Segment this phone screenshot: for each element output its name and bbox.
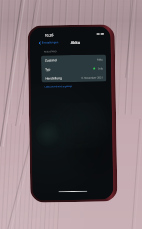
button[interactable]: Typ bbox=[41, 63, 106, 73]
staticText: Info bbox=[98, 66, 103, 70]
other: Zurück bbox=[39, 41, 41, 44]
button[interactable]: Zurück bbox=[39, 40, 59, 44]
staticText: Typ bbox=[45, 67, 50, 71]
staticText: 10.26 bbox=[45, 32, 54, 37]
staticText: Herstellung bbox=[45, 76, 62, 80]
staticText: Zustand bbox=[45, 58, 57, 62]
staticText: Akku bbox=[71, 40, 81, 45]
staticText: Einstellungen bbox=[42, 40, 59, 44]
button[interactable]: Herstellung bbox=[41, 72, 106, 82]
button[interactable]: Zustand bbox=[41, 54, 106, 64]
staticText: AKKUSTAND bbox=[44, 50, 57, 53]
staticText: Akku bbox=[97, 57, 103, 61]
button[interactable]: Ladezustand wird angezeigt bbox=[44, 85, 72, 88]
staticText: 6. November 2021 bbox=[81, 75, 103, 79]
